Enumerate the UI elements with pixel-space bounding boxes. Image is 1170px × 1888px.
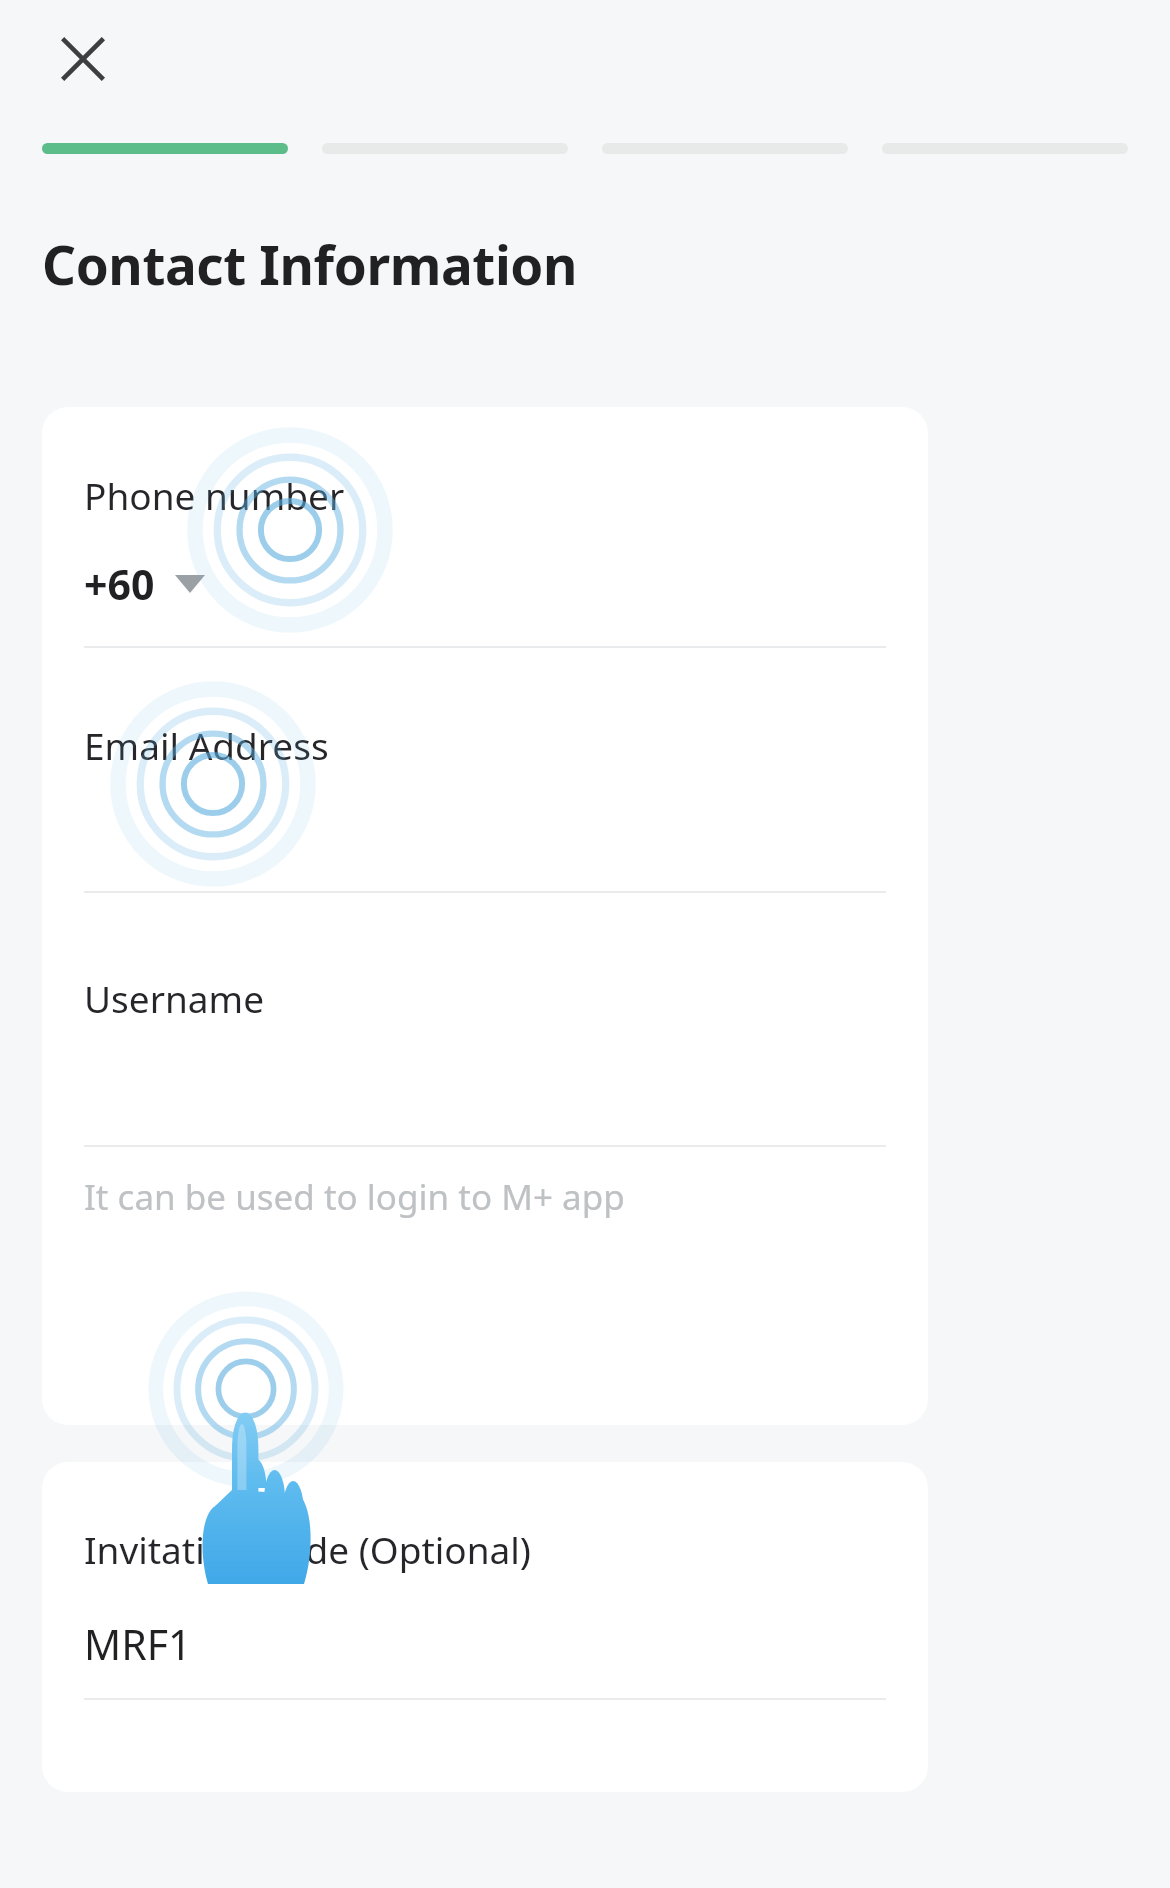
- button[interactable]: Phone number: [42, 407, 928, 648]
- staticText: It can be used to login to M+ app: [84, 1173, 625, 1221]
- staticText: Username: [84, 973, 265, 1023]
- staticText: MRF1: [84, 1616, 192, 1672]
- staticText: Phone number: [84, 470, 345, 520]
- staticText: +60: [84, 556, 155, 612]
- button[interactable]: [42, 143, 288, 154]
- staticText: Contact Information: [42, 228, 578, 300]
- button[interactable]: Username: [42, 893, 928, 1221]
- staticText: Email Address: [84, 720, 329, 770]
- button[interactable]: Close: [44, 20, 122, 98]
- staticText: Invitation Code (Optional): [84, 1524, 531, 1574]
- button[interactable]: Email Address: [42, 648, 928, 893]
- button[interactable]: Invitation Code (Optional): [42, 1462, 928, 1700]
